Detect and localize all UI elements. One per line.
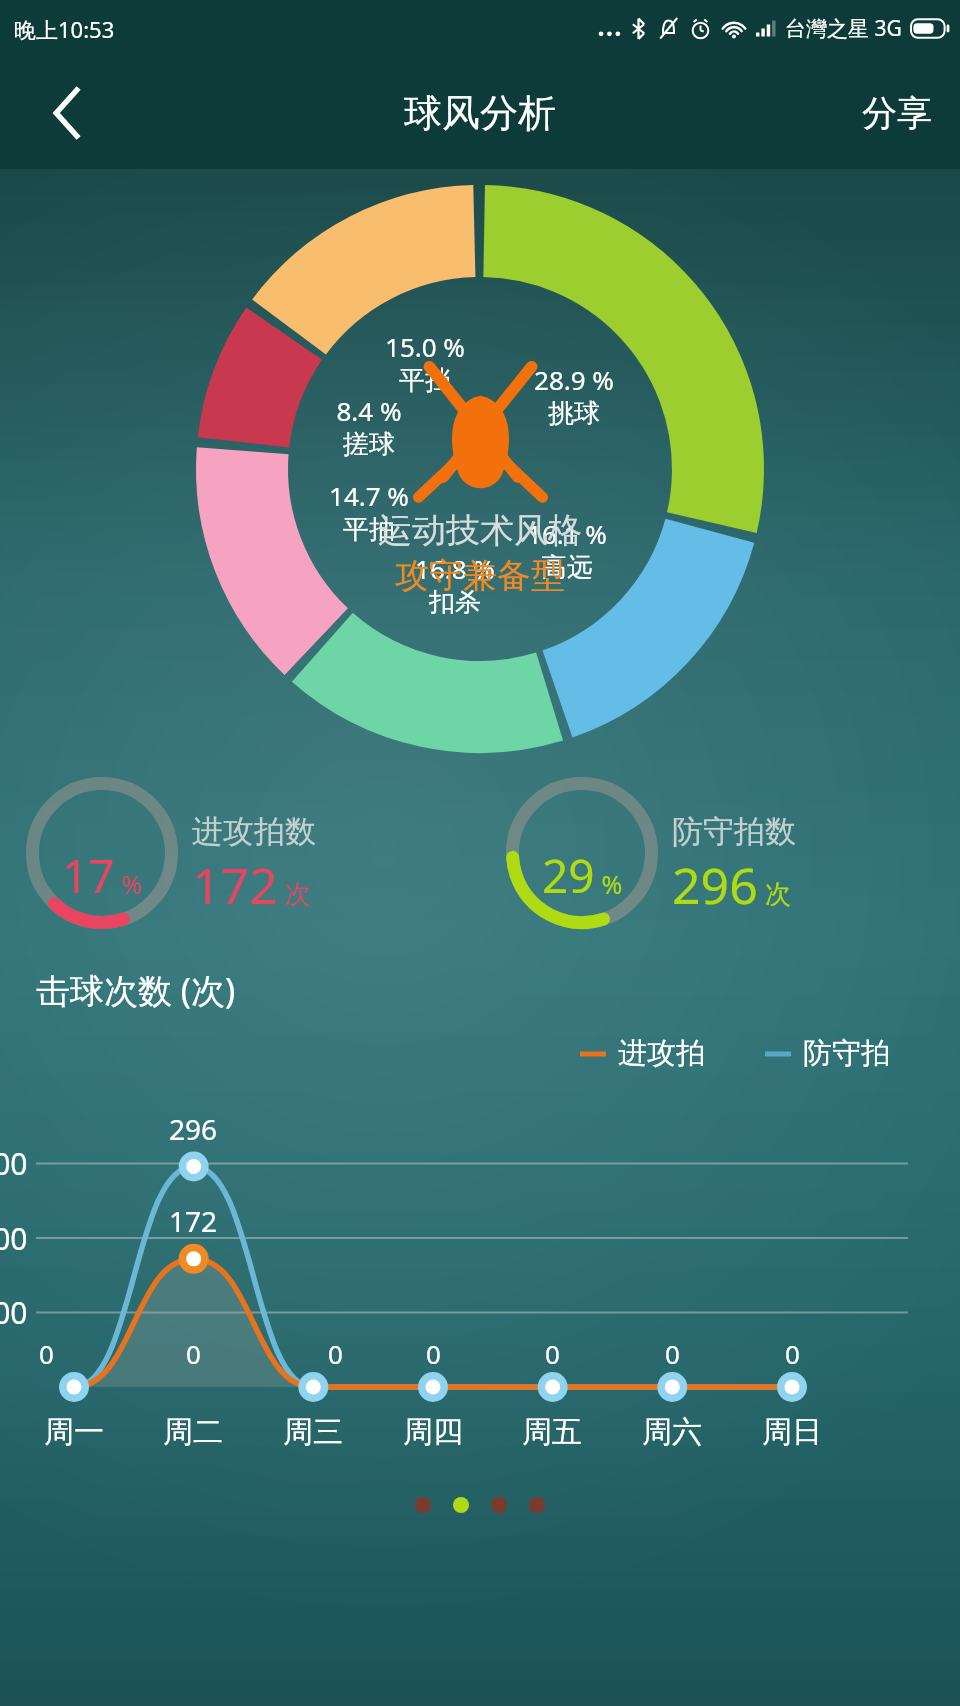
staticText: 球风分析 [404, 89, 556, 137]
staticText: 运动技术风格 [378, 509, 582, 552]
staticText: 300 [0, 1143, 28, 1184]
staticText: 0 [328, 1336, 343, 1371]
staticText: 进攻拍数 [192, 812, 316, 851]
staticText: 台灣之星 3G [785, 14, 902, 43]
staticText: 周三 [283, 1413, 343, 1451]
staticText: 周日 [762, 1413, 822, 1451]
staticText: 搓球 [343, 428, 395, 461]
staticText: 14.7 % [329, 478, 409, 513]
button[interactable]: 防守拍 [765, 1035, 890, 1072]
staticText: 296 [169, 1110, 218, 1148]
staticText: 8.4 % [336, 393, 402, 428]
staticText: 击球次数 (次) [36, 967, 236, 1013]
staticText: 平抽 [343, 513, 395, 546]
staticText: 次 [278, 875, 311, 911]
staticText: 16.1 % [527, 516, 607, 551]
staticText: % [595, 867, 623, 901]
staticText: 0 [426, 1336, 441, 1371]
button[interactable]: Page 2 [453, 1497, 469, 1513]
staticText: 0 [545, 1336, 560, 1371]
staticText: 周五 [522, 1413, 582, 1451]
staticText: 防守拍 [803, 1035, 890, 1072]
staticText: 挑球 [548, 397, 600, 430]
staticText: 0 [785, 1336, 800, 1371]
button[interactable]: Page 4 [529, 1497, 545, 1513]
staticText: 平挡 [399, 364, 451, 397]
button[interactable]: Back [32, 77, 104, 149]
staticText: 进攻拍 [618, 1035, 705, 1072]
staticText: 扣杀 [429, 586, 481, 619]
button[interactable]: 29 [480, 769, 960, 937]
button[interactable]: Page 1 [415, 1497, 431, 1513]
staticText: 次 [758, 875, 791, 911]
staticText: 周二 [163, 1413, 223, 1451]
staticText: 172 [192, 851, 278, 919]
staticText: 16.8 % [415, 551, 495, 586]
staticText: 0 [39, 1336, 54, 1371]
staticText: 分享 [862, 91, 932, 135]
staticText: 100 [0, 1292, 28, 1333]
staticText: 晚上10:53 [14, 14, 115, 44]
staticText: 0 [186, 1336, 201, 1371]
staticText: 296 [672, 851, 758, 919]
staticText: 周一 [44, 1413, 104, 1451]
staticText: 周四 [403, 1413, 463, 1451]
staticText: % [115, 867, 143, 901]
button[interactable]: 进攻拍 [580, 1035, 705, 1072]
staticText: 防守拍数 [672, 812, 796, 851]
staticText: 172 [169, 1202, 218, 1240]
staticText: 17 [62, 844, 115, 907]
staticText: 0 [665, 1336, 680, 1371]
button[interactable]: 分享 [834, 73, 960, 153]
staticText: 29 [542, 844, 595, 907]
staticText: 200 [0, 1218, 28, 1259]
staticText: 攻守兼备型 [395, 554, 565, 597]
staticText: 高远 [541, 551, 593, 584]
staticText: 28.9 % [534, 362, 614, 397]
button[interactable]: 17 [0, 769, 480, 937]
staticText: 15.0 % [385, 329, 465, 364]
staticText: 周六 [642, 1413, 702, 1451]
button[interactable]: Page 3 [491, 1497, 507, 1513]
